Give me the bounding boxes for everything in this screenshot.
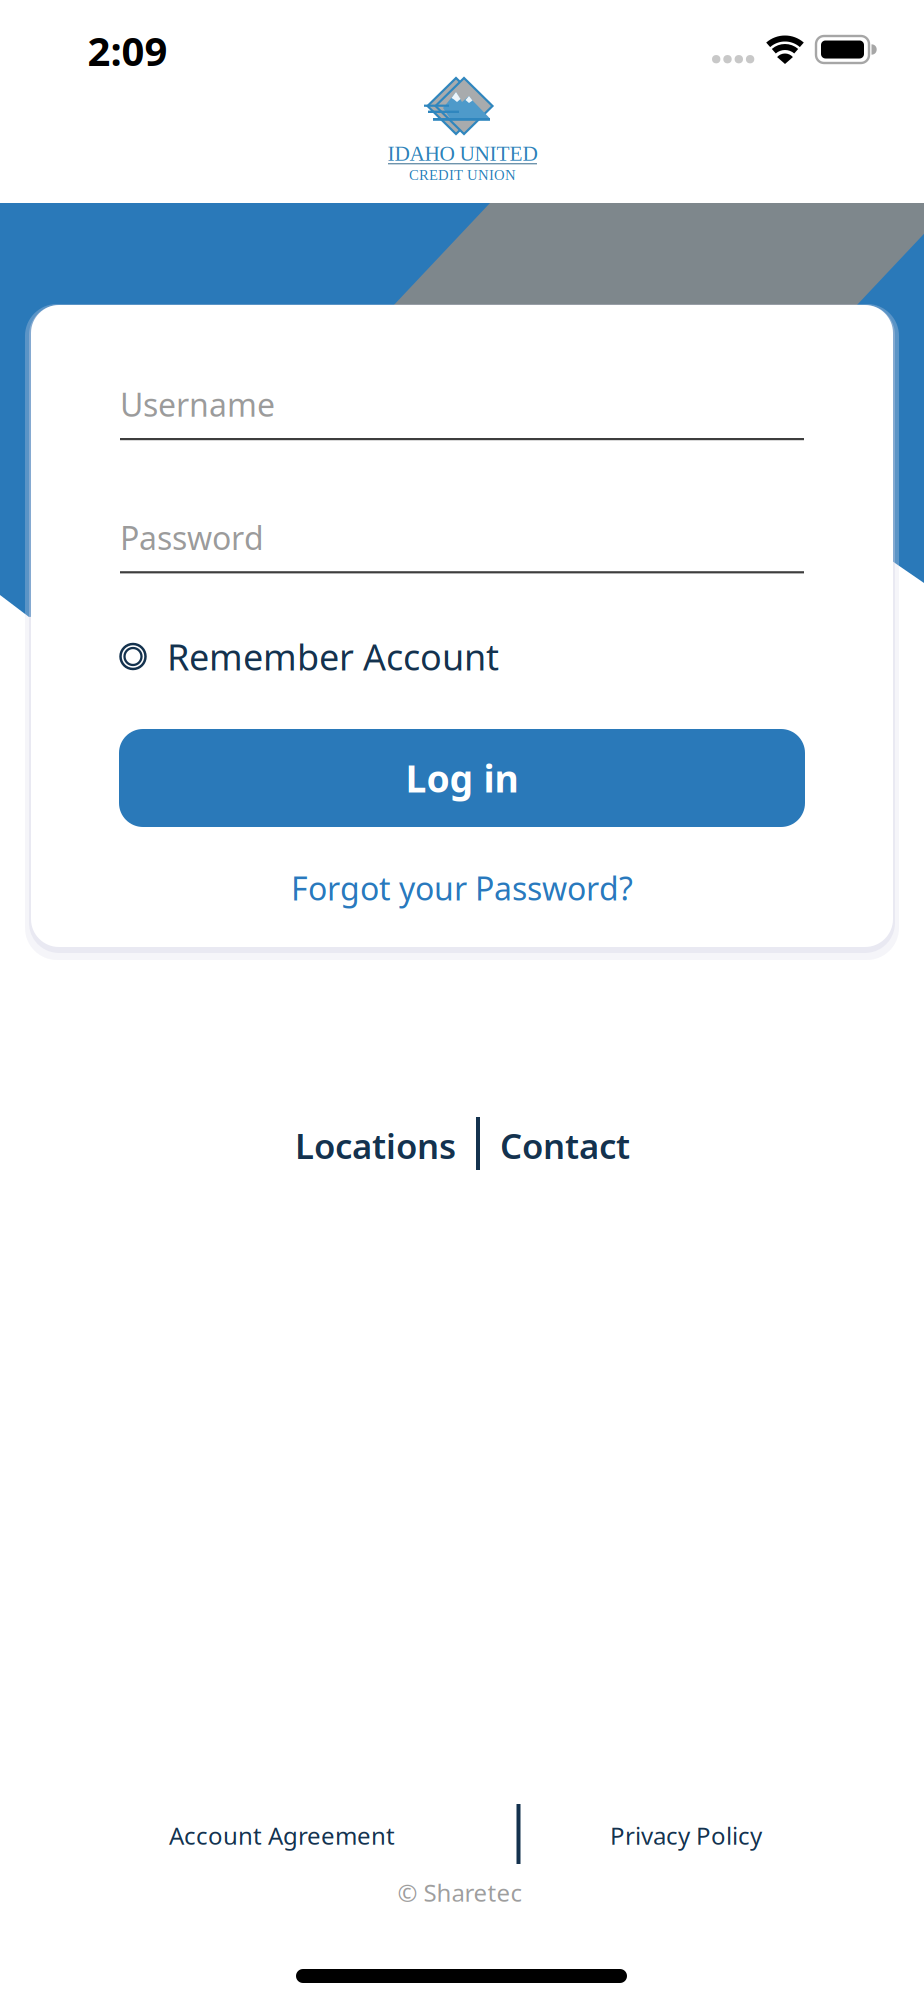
- button[interactable]: Password: [119, 516, 804, 574]
- staticText: Privacy Policy: [610, 1819, 762, 1852]
- button[interactable]: Username: [119, 382, 804, 440]
- staticText: Contact: [500, 1122, 630, 1169]
- staticText: Log in: [405, 753, 518, 803]
- button[interactable]: Log in: [119, 729, 805, 827]
- staticText: 2:09: [87, 23, 167, 78]
- staticText: Forgot your Password?: [291, 866, 633, 910]
- button[interactable]: Remember Account: [119, 632, 499, 681]
- staticText: Password: [120, 516, 264, 559]
- button[interactable]: Locations: [295, 1122, 456, 1169]
- button[interactable]: Privacy Policy: [610, 1819, 762, 1852]
- button[interactable]: Account Agreement: [169, 1819, 395, 1852]
- button[interactable]: Forgot your Password?: [291, 866, 633, 910]
- staticText: Locations: [295, 1122, 456, 1169]
- staticText: Remember Account: [167, 632, 499, 681]
- button[interactable]: Contact: [500, 1122, 630, 1169]
- staticText: CREDIT UNION: [409, 167, 516, 183]
- staticText: © Sharetec: [397, 1876, 522, 1909]
- staticText: Username: [120, 382, 275, 426]
- staticText: Account Agreement: [169, 1819, 395, 1852]
- staticText: IDAHO UNITED: [387, 142, 537, 165]
